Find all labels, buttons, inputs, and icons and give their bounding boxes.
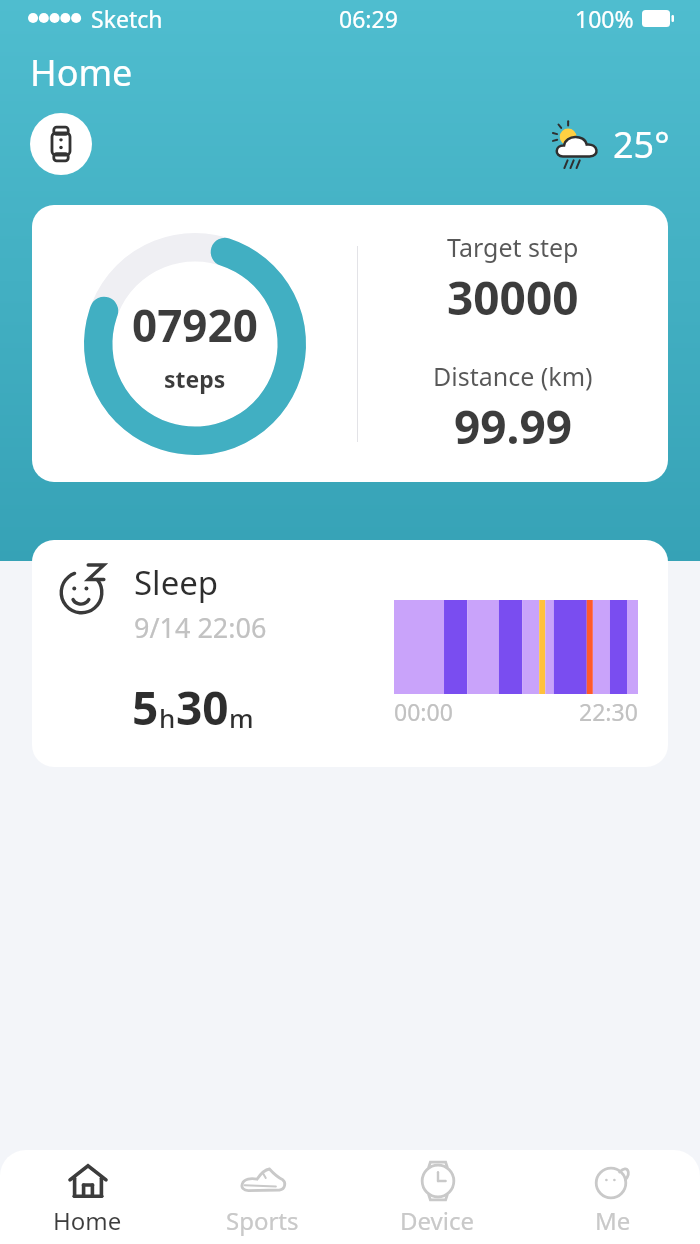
staticText: 22:30 (579, 696, 638, 727)
staticText: Sketch (91, 3, 163, 34)
staticText: 99.99 (454, 395, 573, 458)
staticText: 25° (613, 120, 670, 169)
staticText: 100% (575, 3, 634, 34)
staticText: Sleep (134, 560, 219, 605)
staticText: 30000 (447, 266, 579, 329)
button[interactable]: Me (525, 1150, 700, 1244)
staticText: Device (400, 1204, 475, 1237)
staticText: Me (595, 1204, 631, 1237)
staticText: Target step (447, 230, 579, 264)
button[interactable]: Home (0, 1150, 175, 1244)
button[interactable]: Weather, 25 degrees (549, 120, 670, 169)
button[interactable]: Sleep (32, 540, 668, 767)
staticText: m (229, 700, 254, 735)
staticText: Home (53, 1204, 122, 1237)
staticText: steps (164, 363, 226, 394)
button[interactable]: 07920 (32, 205, 668, 482)
staticText: 07920 (132, 295, 258, 355)
staticText: 9/14 22:06 (134, 609, 267, 646)
button[interactable]: Device (350, 1150, 525, 1244)
staticText: Distance (km) (433, 359, 593, 393)
staticText: h (159, 700, 176, 735)
staticText: Sports (226, 1204, 299, 1237)
button[interactable]: Sports (175, 1150, 350, 1244)
staticText: 06:29 (339, 3, 398, 34)
staticText: 00:00 (394, 696, 453, 727)
staticText: 5 (132, 676, 159, 739)
button[interactable]: My band device (30, 113, 92, 175)
staticText: 30 (176, 676, 229, 739)
staticText: Home (30, 48, 133, 97)
